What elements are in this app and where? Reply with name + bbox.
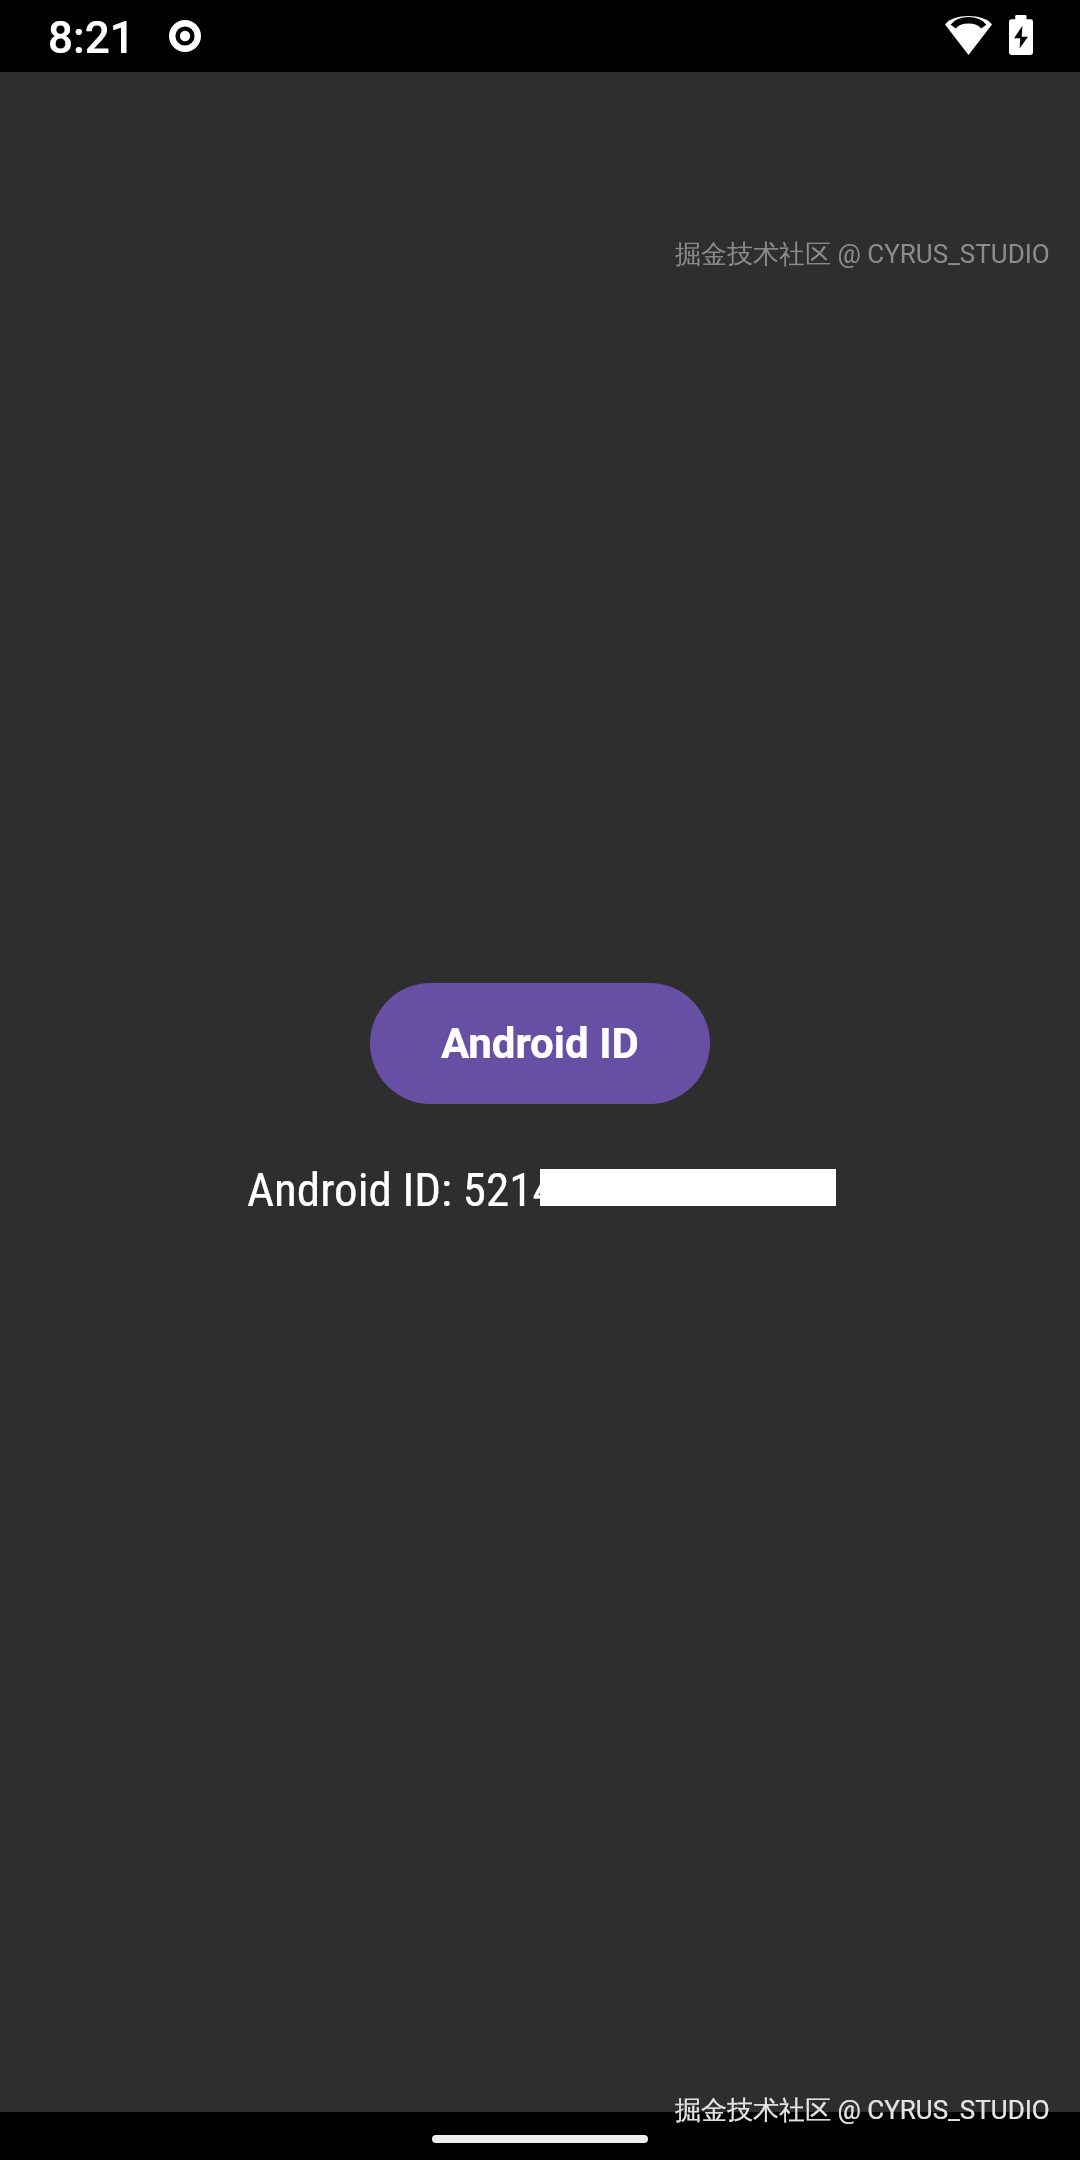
staticText: 8:21 [48,12,135,64]
staticText: Android ID: 5214c2a94cb18fa1 [247,1162,822,1217]
other: Screen recording [169,20,201,52]
staticText: Android ID [441,1019,639,1068]
other: Battery charging [1009,15,1033,55]
other: Wi-Fi [945,13,992,55]
button[interactable]: Android ID [370,983,710,1104]
staticText: 掘金技术社区 @ CYRUS_STUDIO [675,2094,1050,2127]
staticText: 掘金技术社区 @ CYRUS_STUDIO [675,238,1050,271]
